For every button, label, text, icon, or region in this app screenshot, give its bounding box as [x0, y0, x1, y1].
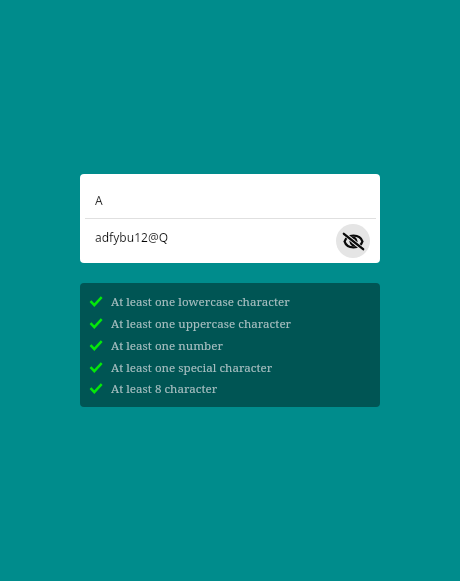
button[interactable]: At least one number	[80, 334, 380, 356]
button[interactable]: Hide password	[336, 224, 370, 258]
button[interactable]: At least 8 character	[80, 377, 380, 399]
button[interactable]: At least one uppercase character	[80, 312, 380, 334]
button[interactable]: adfybu12@Q	[80, 219, 380, 263]
staticText: At least one special character	[111, 360, 273, 376]
button[interactable]: A	[80, 174, 380, 218]
staticText: At least 8 character	[111, 381, 218, 397]
staticText: A	[95, 192, 103, 208]
button[interactable]: At least one special character	[80, 356, 380, 378]
staticText: adfybu12@Q	[95, 229, 169, 245]
button[interactable]: At least one lowercase character	[80, 290, 380, 312]
staticText: At least one uppercase character	[111, 316, 292, 332]
staticText: At least one number	[111, 338, 223, 354]
staticText: At least one lowercase character	[111, 294, 290, 310]
